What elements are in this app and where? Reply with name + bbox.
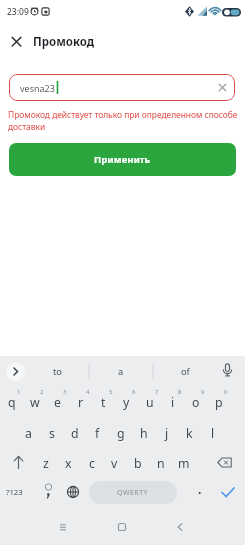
button[interactable]: r	[69, 387, 92, 417]
staticText: r	[78, 394, 84, 411]
staticText: f	[95, 425, 100, 442]
staticText: 8	[178, 388, 182, 396]
button[interactable]: b	[126, 448, 149, 478]
button[interactable]: o	[184, 387, 207, 417]
staticText: v	[111, 455, 118, 472]
button[interactable]: QWERTY	[89, 481, 177, 504]
button[interactable]: h	[132, 418, 155, 448]
staticText: w	[30, 394, 40, 411]
button[interactable]: a	[93, 359, 149, 383]
staticText: u	[146, 394, 154, 411]
staticText: 0	[224, 388, 228, 396]
staticText: s	[49, 425, 55, 442]
button[interactable]: vesna23	[9, 74, 235, 101]
staticText: a	[118, 365, 124, 378]
button[interactable]	[6, 362, 25, 381]
button[interactable]: u	[138, 387, 161, 417]
staticText: e	[54, 394, 61, 411]
staticText: l	[211, 425, 215, 442]
staticText: o	[192, 394, 200, 411]
button[interactable]: j	[155, 418, 178, 448]
staticText: 23:09	[7, 6, 29, 18]
staticText: to	[53, 365, 62, 378]
staticText: 1	[17, 388, 21, 396]
staticText: i	[171, 394, 175, 411]
button[interactable]: q	[0, 387, 23, 417]
button[interactable]: .	[190, 476, 210, 502]
staticText: 3	[63, 388, 67, 396]
button[interactable]	[38, 480, 59, 504]
button[interactable]	[8, 452, 29, 473]
button[interactable]	[54, 518, 72, 536]
button[interactable]: g	[109, 418, 132, 448]
button[interactable]	[6, 31, 27, 52]
staticText: t	[101, 394, 106, 411]
button[interactable]: w	[23, 387, 46, 417]
button[interactable]: s	[40, 418, 63, 448]
button[interactable]: k	[178, 418, 201, 448]
button[interactable]: z	[34, 448, 57, 478]
button[interactable]	[63, 482, 83, 502]
staticText: j	[165, 425, 169, 442]
staticText: ?123	[6, 487, 23, 498]
staticText: QWERTY	[117, 488, 149, 498]
staticText: 6	[132, 388, 136, 396]
button[interactable]: d	[63, 418, 86, 448]
staticText: p	[215, 394, 223, 411]
staticText: y	[123, 394, 130, 411]
button[interactable]: n	[149, 448, 172, 478]
staticText: Промокод	[33, 34, 95, 50]
staticText: x	[65, 455, 72, 472]
button[interactable]	[218, 482, 238, 502]
staticText: n	[157, 455, 165, 472]
button[interactable]: to	[29, 359, 85, 383]
button[interactable]: ?123	[1, 479, 27, 505]
staticText: h	[140, 425, 148, 442]
button[interactable]	[171, 518, 189, 536]
button[interactable]	[214, 452, 236, 474]
button[interactable]: f	[86, 418, 109, 448]
staticText: 2	[40, 388, 44, 396]
staticText: m	[178, 455, 190, 472]
staticText: 9	[201, 388, 205, 396]
staticText: q	[8, 394, 16, 411]
staticText: vesna23	[20, 82, 55, 94]
button[interactable]: of	[157, 359, 213, 383]
button[interactable]: x	[57, 448, 80, 478]
staticText: b	[134, 455, 142, 472]
button[interactable]: Применить	[9, 143, 236, 176]
staticText: z	[43, 455, 49, 472]
button[interactable]: y	[115, 387, 138, 417]
staticText: 5	[109, 388, 113, 396]
button[interactable]: e	[46, 387, 69, 417]
staticText: 4	[86, 388, 90, 396]
staticText: k	[186, 425, 193, 442]
button[interactable]: v	[103, 448, 126, 478]
staticText: доставки	[8, 121, 46, 132]
button[interactable]: m	[172, 448, 195, 478]
staticText: of	[181, 365, 190, 378]
staticText: g	[117, 425, 125, 442]
button[interactable]: a	[17, 418, 40, 448]
staticText: a	[25, 425, 32, 442]
staticText: Применить	[94, 153, 151, 166]
button[interactable]: i	[161, 387, 184, 417]
button[interactable]: p	[207, 387, 230, 417]
button[interactable]: t	[92, 387, 115, 417]
staticText: 7	[155, 388, 159, 396]
staticText: .	[198, 481, 202, 497]
staticText: d	[71, 425, 79, 442]
button[interactable]: c	[80, 448, 103, 478]
button[interactable]	[113, 518, 131, 536]
staticText: Промокод действует только при определенн…	[8, 109, 238, 120]
button[interactable]: l	[201, 418, 224, 448]
staticText: c	[89, 455, 95, 472]
